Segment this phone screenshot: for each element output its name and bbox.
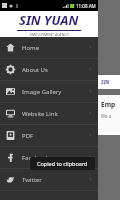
staticText: > (89, 66, 92, 73)
staticText: Website Link (22, 110, 58, 118)
button[interactable]: Home (0, 37, 98, 58)
staticText: > (89, 132, 92, 139)
button[interactable]: About Us (0, 59, 98, 80)
staticText: > (89, 110, 92, 117)
staticText: Twitter (22, 176, 42, 184)
staticText: Emp (101, 100, 116, 109)
staticText: Copied to clipboard (37, 160, 88, 167)
button[interactable]: Website Link (0, 103, 98, 124)
other: About Us (6, 65, 15, 74)
staticText: PDF (22, 132, 34, 140)
staticText: About Us (22, 66, 48, 74)
staticText: Image Gallery (22, 88, 62, 96)
staticText: We a (101, 113, 112, 119)
staticText: > (89, 154, 92, 161)
staticText: SIN YUAN (19, 11, 79, 29)
button[interactable]: Facebook (0, 147, 98, 168)
staticText: SIN (101, 79, 111, 86)
staticText: Facebook (22, 154, 49, 162)
other: PDF (6, 131, 15, 140)
other: Twitter (6, 175, 15, 184)
button[interactable]: Image Gallery (0, 81, 98, 102)
staticText: > (89, 176, 92, 183)
other: Image Gallery (6, 87, 15, 96)
staticText: > (89, 44, 92, 51)
other: Home (6, 43, 15, 52)
other: Facebook (6, 153, 15, 162)
staticText: > (89, 88, 92, 95)
staticText: EMPLOYMENT AGENCY (30, 32, 69, 37)
staticText: Home (22, 44, 40, 52)
button[interactable]: PDF (0, 125, 98, 146)
button[interactable]: Twitter (0, 169, 98, 190)
other: Website Link (6, 109, 15, 118)
staticText: 11:08 AM (76, 3, 96, 9)
